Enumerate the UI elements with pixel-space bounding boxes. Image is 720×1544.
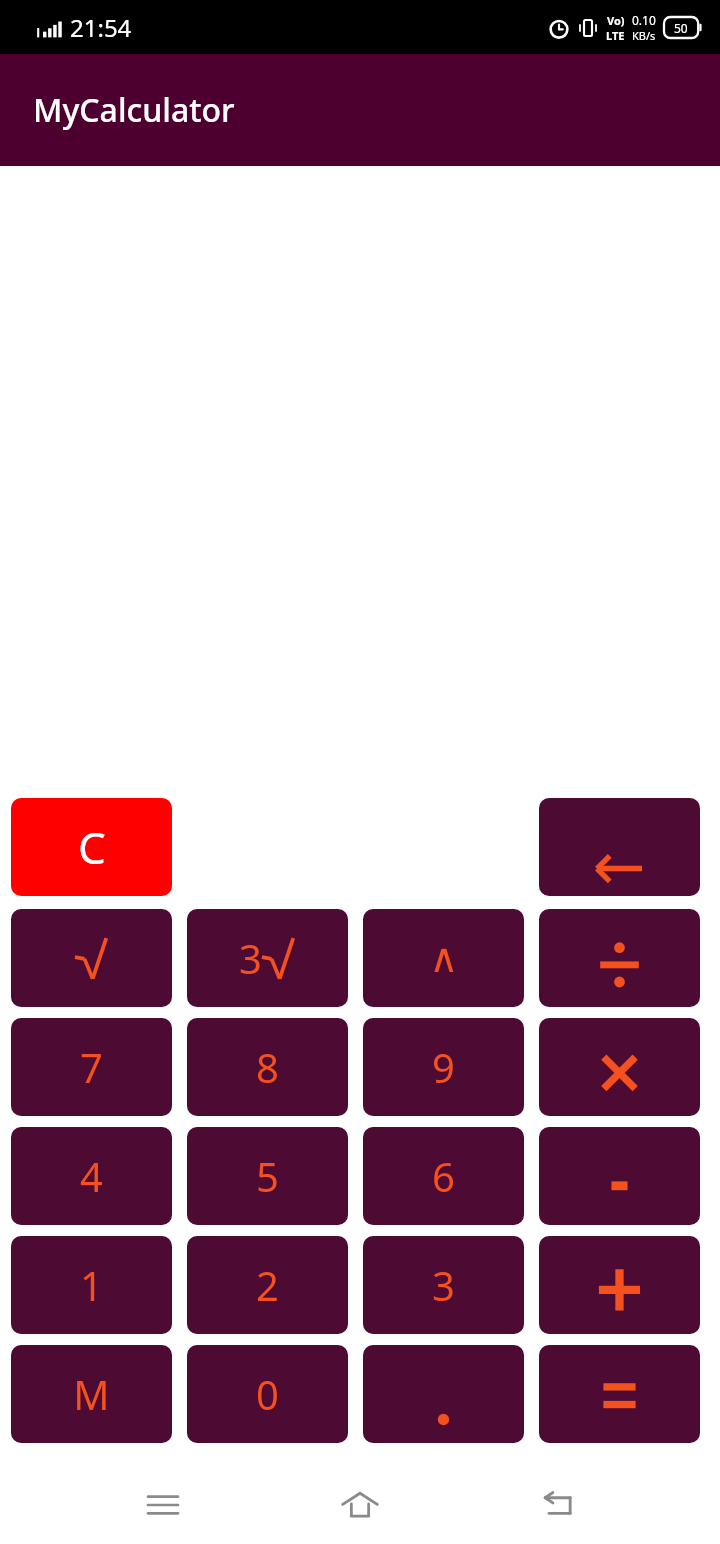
staticText: 8: [256, 1040, 279, 1094]
staticText: 2: [256, 1258, 279, 1312]
button[interactable]: Multiply: [539, 1018, 700, 1116]
staticText: 3: [239, 931, 262, 985]
button[interactable]: Home: [325, 1470, 395, 1540]
button[interactable]: Recent apps: [128, 1470, 198, 1540]
button[interactable]: 3: [363, 1236, 524, 1334]
staticText: 9: [432, 1040, 455, 1094]
button[interactable]: 2: [187, 1236, 348, 1334]
staticText: 0: [256, 1367, 279, 1421]
button[interactable]: 1: [11, 1236, 172, 1334]
staticText: KB/s: [632, 28, 656, 43]
staticText: 0.10: [632, 12, 656, 28]
button[interactable]: Equals: [539, 1345, 700, 1443]
button[interactable]: Decimal point: [363, 1345, 524, 1443]
staticText: 3: [432, 1258, 455, 1312]
button[interactable]: 9: [363, 1018, 524, 1116]
button[interactable]: Backspace: [539, 798, 700, 896]
staticText: 50: [674, 20, 688, 36]
button[interactable]: Divide: [539, 909, 700, 1007]
button[interactable]: Cube root: [187, 909, 348, 1007]
button[interactable]: C: [11, 798, 172, 896]
staticText: 1: [80, 1258, 103, 1312]
button[interactable]: M: [11, 1345, 172, 1443]
staticText: MyCalculator: [33, 88, 235, 132]
button[interactable]: 7: [11, 1018, 172, 1116]
button[interactable]: Square root: [11, 909, 172, 1007]
staticText: LTE: [606, 28, 625, 43]
staticText: 7: [80, 1040, 103, 1094]
button[interactable]: Plus: [539, 1236, 700, 1334]
staticText: Vo): [607, 13, 625, 28]
button[interactable]: 8: [187, 1018, 348, 1116]
staticText: 21:54: [70, 11, 132, 44]
staticText: M: [73, 1367, 110, 1421]
staticText: ∧: [429, 935, 459, 982]
staticText: 6: [432, 1149, 455, 1203]
button[interactable]: Back: [523, 1470, 593, 1540]
button[interactable]: 0: [187, 1345, 348, 1443]
staticText: 4: [80, 1149, 103, 1203]
staticText: 5: [256, 1149, 279, 1203]
button[interactable]: 4: [11, 1127, 172, 1225]
staticText: C: [78, 817, 106, 877]
button[interactable]: 6: [363, 1127, 524, 1225]
button[interactable]: ∧: [363, 909, 524, 1007]
button[interactable]: Minus: [539, 1127, 700, 1225]
button[interactable]: 5: [187, 1127, 348, 1225]
